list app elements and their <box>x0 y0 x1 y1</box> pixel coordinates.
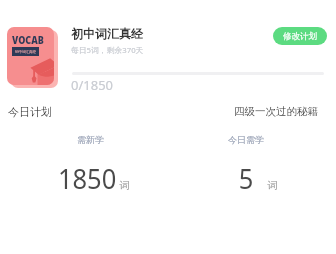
staticText: 词 <box>119 179 130 192</box>
staticText: 需新学 <box>77 134 104 145</box>
button[interactable]: 今日计划 <box>0 98 168 198</box>
button[interactable]: 四级一次过的秘籍 <box>168 98 336 198</box>
staticText: 5 <box>239 159 254 197</box>
staticText: 词 <box>267 179 278 192</box>
button[interactable]: 词汇书封面 <box>0 20 336 96</box>
other: 词汇书封面 <box>7 27 59 89</box>
staticText: 初中词汇真经 <box>15 50 36 54</box>
staticText: 初中词汇真经 <box>71 26 143 41</box>
staticText: 四级一次过的秘籍 <box>234 105 318 118</box>
staticText: VOCAB <box>12 32 44 47</box>
button[interactable]: 修改计划 <box>273 27 327 45</box>
staticText: 0/1850 <box>71 76 114 94</box>
staticText: 修改计划 <box>283 31 317 42</box>
staticText: 今日计划 <box>8 105 52 119</box>
staticText: 每日5词，剩余370天 <box>71 45 144 56</box>
staticText: 今日需学 <box>228 134 264 145</box>
staticText: 1850 <box>58 159 117 197</box>
